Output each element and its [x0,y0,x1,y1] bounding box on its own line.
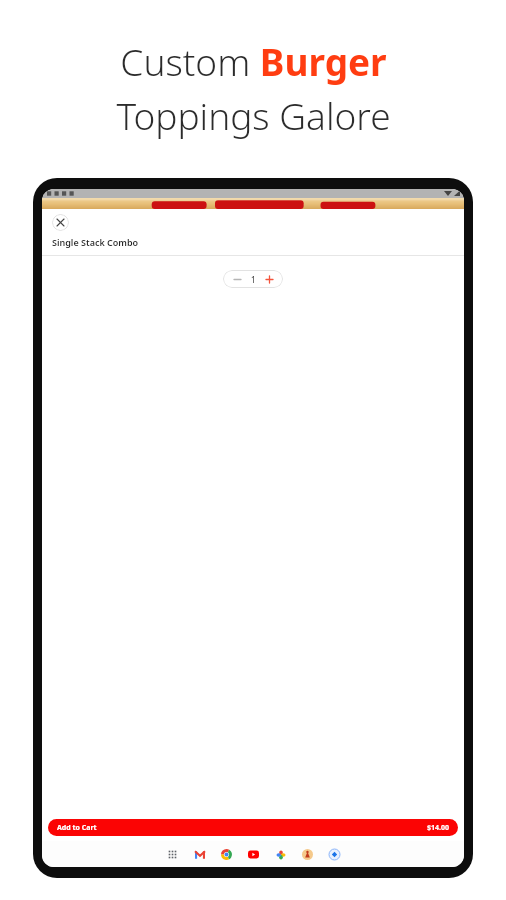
button[interactable]: Close [52,214,69,231]
button[interactable]: Assistant [327,847,342,862]
button[interactable]: Increase quantity [260,270,278,288]
staticText: $14.00 [427,823,449,833]
staticText: Add to Cart [57,823,97,833]
staticText: 1 [251,274,256,285]
button[interactable]: Gmail [192,847,207,862]
staticText: Custom Burger [120,36,387,86]
button[interactable]: Add to Cart [48,819,458,836]
button[interactable]: YouTube [246,847,261,862]
button[interactable]: Food app [300,847,315,862]
staticText: Toppings Galore [116,90,391,140]
staticText: Single Stack Combo [52,236,139,248]
button[interactable]: Decrease quantity [228,270,246,288]
button[interactable]: Photos [273,847,288,862]
button[interactable]: All apps [165,847,180,862]
button[interactable]: Chrome [219,847,234,862]
